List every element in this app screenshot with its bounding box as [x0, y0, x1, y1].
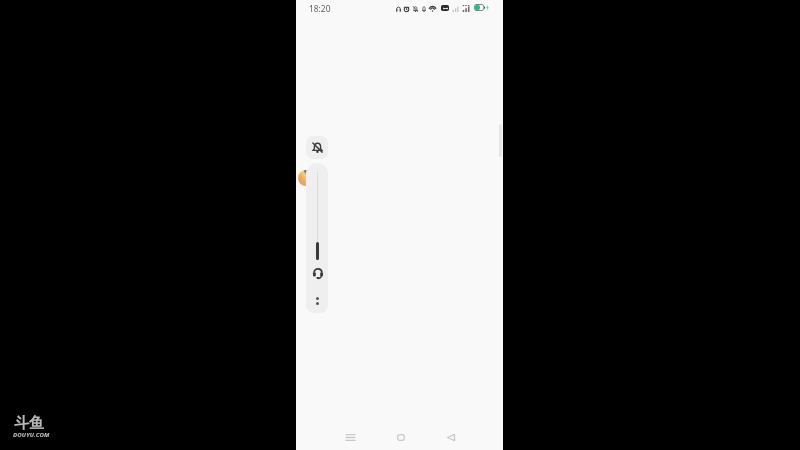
staticText: 18:20 — [309, 3, 331, 14]
button[interactable]: More options — [308, 291, 327, 310]
button[interactable]: Recents — [341, 426, 360, 449]
button[interactable]: Home — [391, 426, 410, 449]
button[interactable]: Mute notifications — [306, 136, 328, 159]
button[interactable]: Back — [441, 426, 460, 449]
staticText: 斗鱼 — [14, 414, 44, 433]
button[interactable]: Headphones — [308, 264, 327, 283]
button[interactable]: Volume slider — [316, 242, 319, 260]
button[interactable]: Streamer avatar — [298, 170, 314, 186]
staticText: DOUYU.COM — [13, 431, 50, 439]
